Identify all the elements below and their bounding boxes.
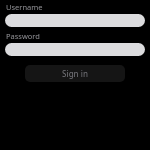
staticText: Sign in: [62, 68, 88, 79]
button[interactable]: [5, 14, 145, 27]
staticText: Password: [6, 31, 40, 41]
staticText: Username: [6, 2, 43, 12]
button[interactable]: [5, 43, 145, 56]
button[interactable]: Sign in: [25, 65, 125, 82]
